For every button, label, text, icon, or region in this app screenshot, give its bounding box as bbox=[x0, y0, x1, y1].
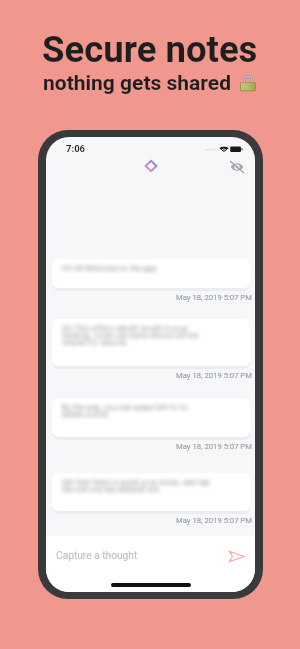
button[interactable] bbox=[52, 319, 250, 366]
button[interactable] bbox=[52, 473, 250, 511]
staticText: May 18, 2019 5:07 PM bbox=[176, 371, 252, 380]
button[interactable]: App logo bbox=[140, 155, 162, 177]
button[interactable]: Send bbox=[228, 548, 245, 565]
button[interactable] bbox=[52, 259, 250, 288]
button[interactable]: Hide notes bbox=[227, 157, 247, 177]
button[interactable] bbox=[52, 398, 250, 437]
staticText: May 18, 2019 5:07 PM bbox=[176, 293, 252, 302]
staticText: 7:06 bbox=[66, 143, 86, 154]
staticText: nothing gets shared bbox=[43, 71, 232, 96]
staticText: Secure notes bbox=[42, 28, 258, 71]
staticText: May 18, 2019 5:07 PM bbox=[176, 442, 252, 451]
staticText: May 18, 2019 5:07 PM bbox=[176, 516, 252, 525]
staticText: Capture a thought bbox=[56, 550, 138, 562]
